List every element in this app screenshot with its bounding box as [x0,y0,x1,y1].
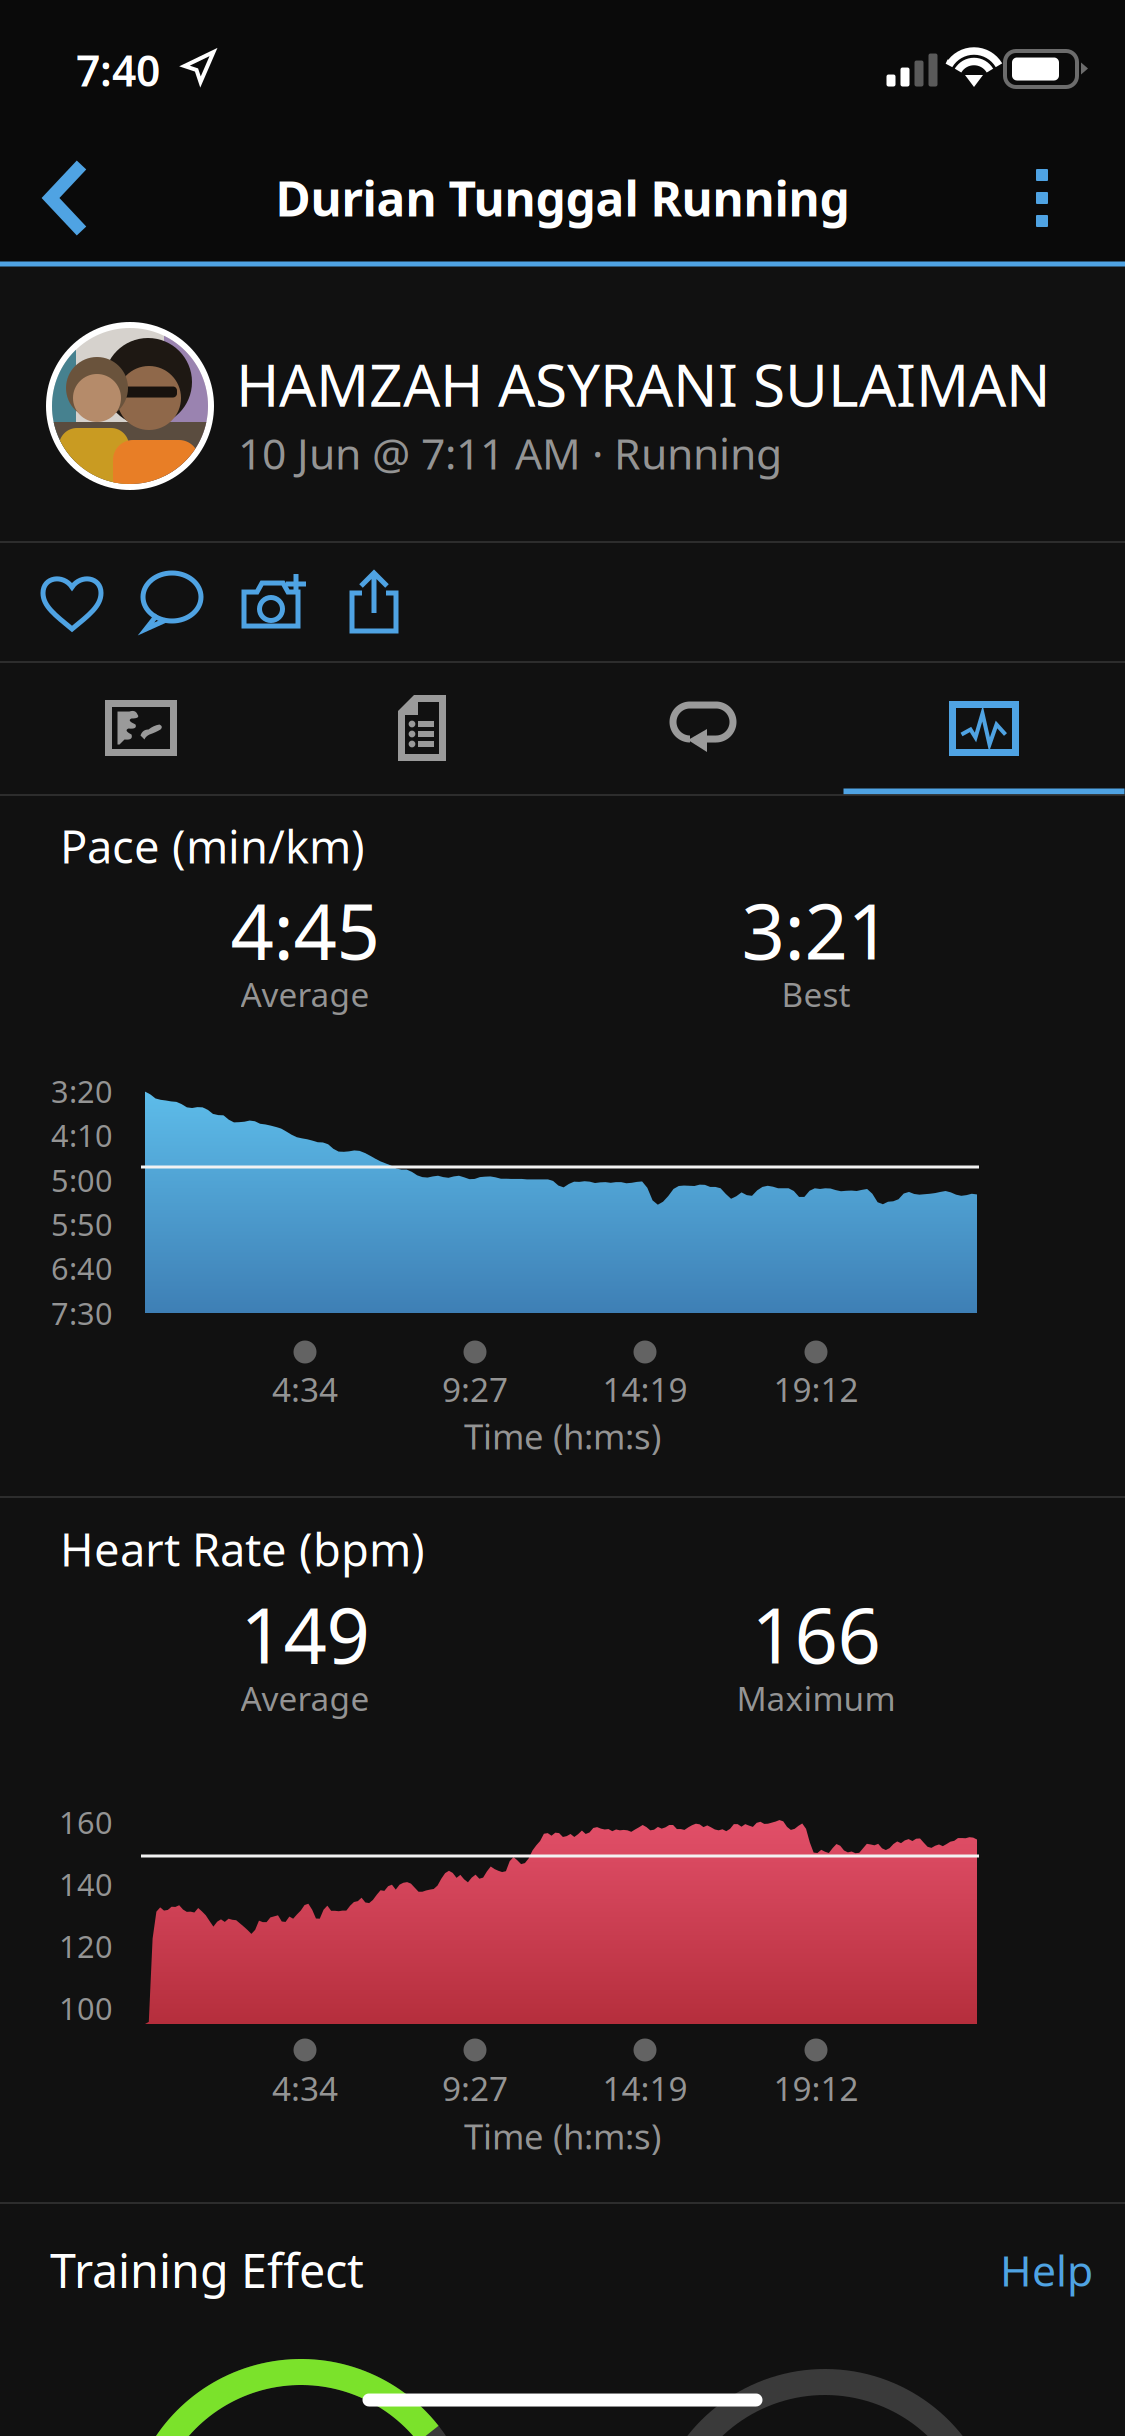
staticText: 3:21 [741,879,890,980]
button[interactable]: Add photo [218,543,330,661]
staticText: Help [1000,2242,1093,2298]
staticText: Heart Rate (bpm) [60,1519,425,1579]
staticText: 120 [59,1926,113,1966]
staticText: Best [781,972,850,1016]
staticText: Maximum [736,1676,895,1720]
staticText: Training Effect [50,2239,364,2301]
staticText: Pace (min/km) [60,816,365,876]
staticText: 4:34 [272,2066,338,2110]
staticText: HAMZAH ASYRANI SULAIMAN [236,345,1051,423]
button[interactable]: Charts [843,661,1124,794]
staticText: 166 [751,1583,880,1684]
staticText: 4:34 [272,1367,338,1411]
button[interactable]: Map [0,661,281,794]
staticText: Time (h:m:s) [464,1413,661,1459]
staticText: 19:12 [773,1367,858,1411]
staticText: 5:50 [51,1204,113,1244]
staticText: 7:30 [51,1293,113,1333]
staticText: 19:12 [773,2066,858,2110]
staticText: Durian Tunggal Running [275,166,849,230]
staticText: 160 [59,1802,113,1842]
staticText: 10 Jun @ 7:11 AM · Running [238,425,782,481]
staticText: Average [240,972,369,1016]
staticText: 9:27 [442,1367,508,1411]
button[interactable]: Comment [117,543,229,661]
staticText: 7:40 [76,42,160,98]
staticText: 100 [59,1988,113,2028]
staticText: 140 [59,1864,113,1904]
button[interactable]: Back [8,133,124,263]
staticText: 149 [240,1583,369,1684]
button[interactable]: Details [281,661,562,794]
button[interactable]: Like [16,543,128,661]
staticText: 4:10 [51,1115,113,1155]
staticText: Time (h:m:s) [464,2113,661,2159]
staticText: 3:20 [51,1071,113,1111]
staticText: 14:19 [602,1367,687,1411]
staticText: 5:00 [51,1160,113,1200]
button[interactable]: More options [987,133,1097,263]
button[interactable]: Laps [562,661,843,794]
staticText: 6:40 [51,1248,113,1288]
staticText: 14:19 [602,2066,687,2110]
staticText: 9:27 [442,2066,508,2110]
button[interactable]: Help [873,2220,1093,2320]
staticText: Average [240,1676,369,1720]
staticText: 4:45 [230,879,379,980]
button[interactable]: Share [318,543,430,661]
